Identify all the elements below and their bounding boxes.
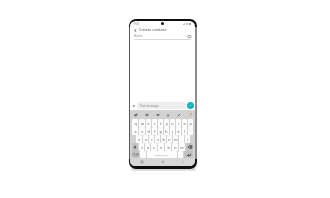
staticText: v (160, 145, 162, 150)
staticText: x (147, 145, 149, 150)
staticText: Text message (140, 104, 159, 108)
button[interactable]: y (164, 119, 169, 127)
button[interactable]: b (161, 135, 166, 143)
button[interactable]: Back (180, 159, 186, 165)
button[interactable]: r (152, 119, 157, 127)
button[interactable]: Text message (137, 102, 186, 109)
button[interactable]: a (132, 127, 138, 135)
button[interactable]: n (167, 135, 172, 143)
staticText: x (145, 137, 147, 142)
button[interactable]: Recent apps (139, 159, 145, 165)
staticText: w (141, 121, 144, 126)
staticText: a (134, 129, 137, 134)
staticText: v (157, 137, 159, 142)
button[interactable]: z (136, 135, 142, 143)
button[interactable]: b (165, 143, 171, 151)
staticText: z (138, 137, 140, 142)
staticText: m (180, 145, 184, 150)
staticText: 9:41 (134, 22, 140, 26)
button[interactable]: x (145, 143, 150, 151)
staticText: English (US) (155, 153, 169, 156)
staticText: o (183, 121, 186, 126)
button[interactable]: Keyboard option (155, 112, 160, 117)
button[interactable]: g (158, 127, 163, 135)
button[interactable]: q (132, 119, 138, 127)
button[interactable]: Keyboard option (144, 112, 149, 117)
button[interactable]: z (139, 143, 144, 151)
staticText: l (184, 129, 185, 134)
staticText: h (165, 129, 168, 134)
button[interactable]: v (155, 135, 160, 143)
staticText: j (172, 129, 173, 134)
staticText: c (151, 137, 153, 142)
button[interactable]: f (152, 127, 157, 135)
staticText: q (134, 121, 137, 126)
button[interactable]: m (179, 143, 185, 151)
staticText: ' (190, 129, 191, 134)
staticText: k (177, 129, 180, 134)
button[interactable]: w (139, 119, 145, 127)
button[interactable]: Keyboard option (176, 112, 181, 117)
staticText: r (154, 121, 156, 126)
button[interactable]: m (173, 135, 178, 143)
staticText: b (167, 145, 170, 150)
button[interactable]: e (146, 119, 151, 127)
staticText: d (147, 129, 150, 134)
button[interactable]: Space (147, 151, 177, 158)
button[interactable]: / (185, 135, 190, 143)
button[interactable]: d (146, 127, 151, 135)
button[interactable]: j (170, 127, 175, 135)
button[interactable]: n (172, 143, 178, 151)
button[interactable]: key (140, 151, 146, 158)
staticText: n (168, 137, 171, 142)
staticText: i (178, 121, 179, 126)
button[interactable]: del (186, 143, 193, 151)
button[interactable]: shift (132, 143, 138, 151)
staticText: z (141, 145, 143, 150)
button[interactable]: v (158, 143, 164, 151)
staticText: . (181, 137, 182, 142)
staticText: f (154, 129, 156, 134)
button[interactable]: h (164, 127, 169, 135)
staticText: s (141, 129, 143, 134)
staticText: u (171, 121, 174, 126)
button[interactable]: c (149, 135, 154, 143)
button[interactable]: Keyboard option (187, 112, 192, 117)
button[interactable]: ' (188, 127, 193, 135)
button[interactable]: Send (187, 102, 194, 109)
button[interactable]: Home (160, 159, 166, 165)
button[interactable]: sym (132, 151, 139, 158)
staticText: Name (134, 34, 143, 38)
button[interactable]: . (178, 151, 183, 158)
button[interactable]: . (179, 135, 184, 143)
button[interactable]: c (151, 143, 157, 151)
staticText: / (187, 137, 189, 142)
button[interactable]: Navigate up (132, 27, 138, 33)
staticText: Create contact (139, 27, 167, 32)
button[interactable]: o (182, 119, 187, 127)
button[interactable]: k (176, 127, 181, 135)
button[interactable]: t (158, 119, 163, 127)
button[interactable]: Attach (132, 104, 136, 108)
button[interactable]: p (188, 119, 193, 127)
button[interactable]: Keyboard option (133, 112, 138, 117)
button[interactable]: i (176, 119, 181, 127)
staticText: y (166, 121, 168, 126)
staticText: b (162, 137, 165, 142)
staticText: ?123 (132, 153, 139, 157)
button[interactable]: l (182, 127, 187, 135)
staticText: t (160, 121, 162, 126)
button[interactable]: Keyboard option (165, 112, 170, 117)
button[interactable]: s (139, 127, 145, 135)
button[interactable]: Scan card (187, 34, 191, 38)
staticText: e (147, 121, 150, 126)
staticText: p (189, 121, 192, 126)
staticText: n (174, 145, 177, 150)
button[interactable]: x (143, 135, 148, 143)
button[interactable]: u (170, 119, 175, 127)
staticText: c (153, 145, 155, 150)
staticText: g (159, 129, 162, 134)
staticText: . (180, 152, 181, 157)
staticText: m (174, 137, 178, 142)
button[interactable]: enter (184, 151, 193, 158)
